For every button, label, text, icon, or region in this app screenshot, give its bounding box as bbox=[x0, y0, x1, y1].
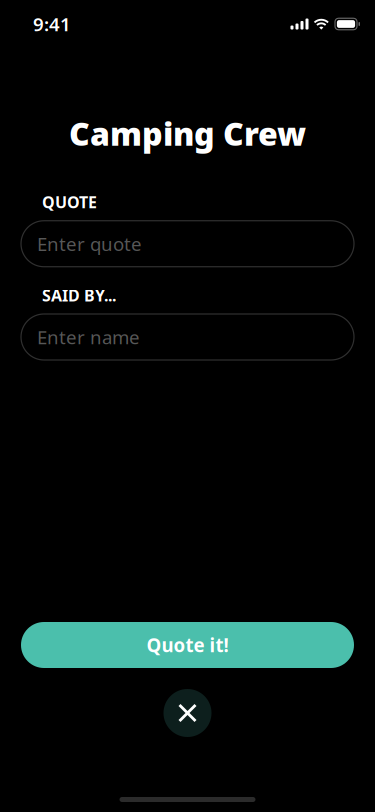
staticText: QUOTE bbox=[42, 191, 97, 213]
staticText: 9:41 bbox=[33, 12, 71, 36]
button[interactable]: Close bbox=[163, 689, 211, 737]
staticText: Enter quote bbox=[37, 231, 142, 256]
staticText: Camping Crew bbox=[69, 112, 306, 154]
button[interactable]: Quote it! bbox=[21, 622, 354, 668]
button[interactable]: Enter name bbox=[21, 314, 354, 360]
staticText: SAID BY... bbox=[42, 285, 116, 306]
staticText: Quote it! bbox=[146, 633, 228, 657]
button[interactable]: Enter quote bbox=[21, 221, 354, 267]
staticText: Enter name bbox=[37, 325, 140, 349]
